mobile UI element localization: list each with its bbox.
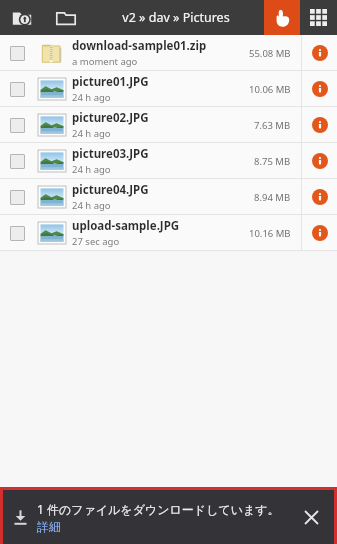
staticText: 10.06 MB	[249, 83, 291, 96]
button[interactable]: Details for picture01.JPG	[302, 71, 337, 107]
staticText: 55.08 MB	[249, 47, 291, 60]
staticText: picture01.JPG	[72, 74, 149, 90]
button[interactable]: Select picture04.JPG	[0, 179, 337, 215]
button[interactable]: Select upload-sample.JPG	[0, 215, 337, 251]
button[interactable]: Details for picture02.JPG	[302, 107, 337, 143]
staticText: 24 h ago	[72, 199, 111, 212]
button[interactable]: Select picture02.JPG	[0, 107, 34, 143]
button[interactable]: Select download-sample01.zip	[0, 35, 337, 71]
staticText: 27 sec ago	[72, 235, 120, 248]
staticText: 7.63 MB	[254, 119, 291, 132]
button[interactable]: Details for picture03.JPG	[302, 143, 337, 179]
button[interactable]: Select picture04.JPG	[0, 179, 34, 215]
staticText: v2 » dav » Pictures	[122, 9, 230, 26]
staticText: picture03.JPG	[72, 146, 149, 162]
button[interactable]: Upload file	[0, 0, 44, 35]
button[interactable]: New folder	[44, 0, 88, 35]
staticText: 10.16 MB	[249, 227, 291, 240]
button[interactable]: Select download-sample01.zip	[0, 35, 34, 71]
button[interactable]: Select picture03.JPG	[0, 143, 34, 179]
button[interactable]: Select picture03.JPG	[0, 143, 337, 179]
button[interactable]: Details for picture04.JPG	[302, 179, 337, 215]
button[interactable]: Select upload-sample.JPG	[0, 215, 34, 251]
button[interactable]: Details for upload-sample.JPG	[302, 215, 337, 251]
button[interactable]: Details for download-sample01.zip	[302, 35, 337, 71]
button[interactable]: Select mode	[264, 0, 300, 35]
staticText: 24 h ago	[72, 127, 111, 140]
button[interactable]: Dismiss	[298, 504, 324, 530]
staticText: 1 件のファイルをダウンロードしています。 詳細	[37, 501, 292, 534]
button[interactable]: 1 件のファイルをダウンロードしています。 詳細	[3, 490, 334, 544]
staticText: a moment ago	[72, 55, 138, 68]
staticText: 24 h ago	[72, 163, 111, 176]
staticText: picture04.JPG	[72, 182, 149, 198]
staticText: 8.94 MB	[254, 191, 291, 204]
staticText: 8.75 MB	[254, 155, 291, 168]
staticText: 24 h ago	[72, 91, 111, 104]
staticText: upload-sample.JPG	[72, 218, 180, 234]
button[interactable]: Select picture01.JPG	[0, 71, 337, 107]
staticText: download-sample01.zip	[72, 38, 207, 54]
staticText: picture02.JPG	[72, 110, 149, 126]
button[interactable]: Grid view	[300, 0, 337, 35]
button[interactable]: Select picture01.JPG	[0, 71, 34, 107]
button[interactable]: Select picture02.JPG	[0, 107, 337, 143]
